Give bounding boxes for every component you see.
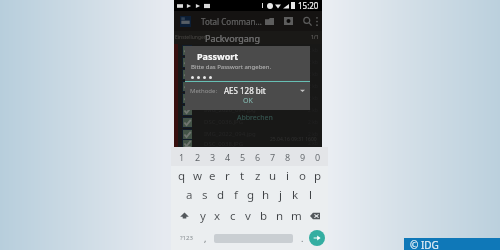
button[interactable]: b [256, 205, 272, 226]
staticText: 2 kb [308, 83, 318, 90]
staticText: f [234, 187, 238, 203]
staticText: Passwort [197, 50, 239, 62]
button[interactable]: Methode: [190, 85, 305, 96]
button[interactable]: l [303, 185, 318, 205]
staticText: w [193, 168, 203, 184]
button[interactable]: w [190, 166, 205, 185]
button[interactable]: Enter [309, 230, 325, 246]
button[interactable]: 6 [250, 147, 265, 166]
staticText: u [269, 168, 277, 184]
button[interactable]: q [174, 166, 190, 185]
button[interactable]: v [240, 205, 256, 226]
button[interactable]: m [288, 205, 304, 226]
button[interactable]: g [243, 185, 258, 205]
staticText: 4 [225, 151, 231, 163]
staticText: q [178, 168, 186, 184]
button[interactable]: j [273, 185, 288, 205]
staticText: t [240, 168, 245, 184]
button[interactable]: f [228, 185, 243, 205]
staticText: p [314, 168, 322, 184]
button[interactable]: 3 [205, 147, 220, 166]
staticText: 3 [210, 151, 216, 163]
staticText: DSC_0036.JPG [204, 118, 244, 126]
button[interactable]: i [280, 166, 295, 185]
button[interactable]: n [272, 205, 288, 226]
button[interactable]: k [288, 185, 303, 205]
staticText: g [247, 187, 255, 203]
staticText: Bitte das Passwort angeben. [191, 63, 272, 71]
button[interactable]: p [310, 166, 325, 185]
staticText: DSC_0034.JPG [204, 94, 244, 102]
staticText: r [225, 168, 230, 184]
button[interactable]: Search [300, 14, 314, 28]
staticText: IMG_2016_094.jpg [204, 58, 256, 66]
button[interactable]: s [197, 185, 213, 205]
staticText: 2 kb [308, 107, 318, 114]
button[interactable]: ?123 [174, 226, 198, 250]
button[interactable]: 0 [310, 147, 325, 166]
button[interactable]: a [181, 185, 197, 205]
button[interactable]: Shift [174, 205, 195, 226]
staticText: e [209, 168, 216, 184]
button[interactable]: u [265, 166, 280, 185]
staticText: , [204, 232, 207, 244]
button[interactable]: x [210, 205, 225, 226]
button[interactable]: o [295, 166, 310, 185]
button[interactable]: 1 [174, 147, 190, 166]
staticText: 1/1 [311, 34, 319, 41]
staticText: DSC_0032.JPG [204, 70, 244, 78]
button[interactable]: r [220, 166, 235, 185]
button[interactable]: Camera [281, 14, 295, 28]
staticText: i [286, 168, 289, 184]
staticText: Abbrechen [237, 113, 273, 123]
staticText: Packvorgang [205, 32, 260, 44]
staticText: © IDG [410, 238, 439, 250]
button[interactable]: 8 [280, 147, 295, 166]
staticText: 25.04.16 09:31 1600 [270, 136, 317, 143]
staticText: 7 [270, 151, 276, 163]
staticText: 6 [255, 151, 261, 163]
button[interactable]: 7 [265, 147, 280, 166]
staticText: b [260, 208, 268, 224]
button[interactable]: z [250, 166, 265, 185]
button[interactable]: c [225, 205, 240, 226]
button[interactable]: . [295, 226, 309, 250]
button[interactable]: OK [243, 96, 253, 106]
staticText: z [255, 168, 261, 184]
staticText: o [299, 168, 306, 184]
button[interactable]: 9 [295, 147, 310, 166]
staticText: 2 kb [308, 95, 318, 102]
staticText: l [309, 187, 312, 203]
button[interactable]: y [195, 205, 210, 226]
staticText: 2 [195, 151, 201, 163]
staticText: Einstellungen [175, 34, 207, 41]
staticText: . [301, 232, 304, 244]
button[interactable]: 4 [220, 147, 235, 166]
button[interactable]: 5 [235, 147, 250, 166]
button[interactable]: More options [315, 14, 319, 28]
staticText: 0 [315, 151, 321, 163]
staticText: m [291, 208, 302, 224]
button[interactable]: h [258, 185, 273, 205]
button[interactable]: , [198, 226, 212, 250]
button[interactable]: e [205, 166, 220, 185]
staticText: Total Comman… [201, 16, 262, 27]
staticText: 2 kb [308, 59, 318, 66]
button[interactable]: Folder [262, 14, 276, 28]
staticText: c [230, 208, 236, 224]
button[interactable]: t [235, 166, 250, 185]
staticText: 8 [285, 151, 291, 163]
staticText: d [217, 187, 225, 203]
button[interactable]: Backspace [304, 205, 325, 226]
staticText: a [186, 187, 193, 203]
button[interactable]: d [213, 185, 228, 205]
staticText: j [279, 187, 282, 203]
button[interactable]: 2 [190, 147, 205, 166]
staticText: v [245, 208, 251, 224]
